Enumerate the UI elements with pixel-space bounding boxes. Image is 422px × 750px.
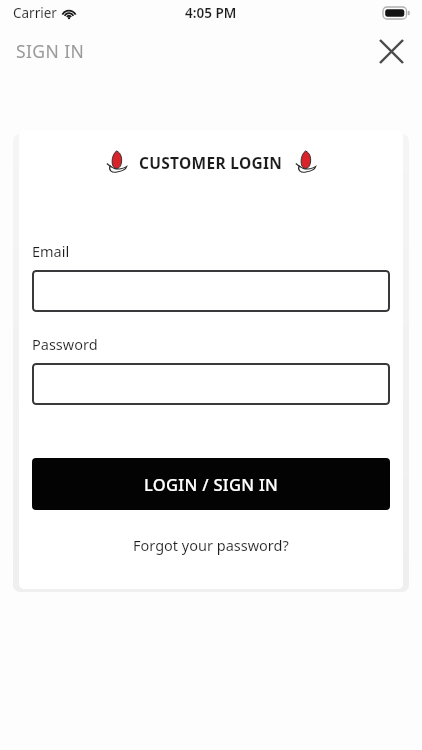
staticText: CUSTOMER LOGIN: [139, 152, 283, 173]
button[interactable]: [32, 270, 390, 312]
staticText: Email: [32, 241, 70, 261]
staticText: LOGIN / SIGN IN: [144, 473, 279, 495]
button[interactable]: Close: [374, 34, 408, 68]
staticText: 4:05 PM: [185, 4, 237, 22]
button[interactable]: [32, 363, 390, 405]
button[interactable]: Forgot your password?: [129, 531, 293, 559]
staticText: Carrier: [13, 4, 57, 22]
button[interactable]: LOGIN / SIGN IN: [32, 458, 390, 510]
button[interactable]: SIGN IN: [0, 39, 85, 63]
staticText: Password: [32, 334, 98, 354]
